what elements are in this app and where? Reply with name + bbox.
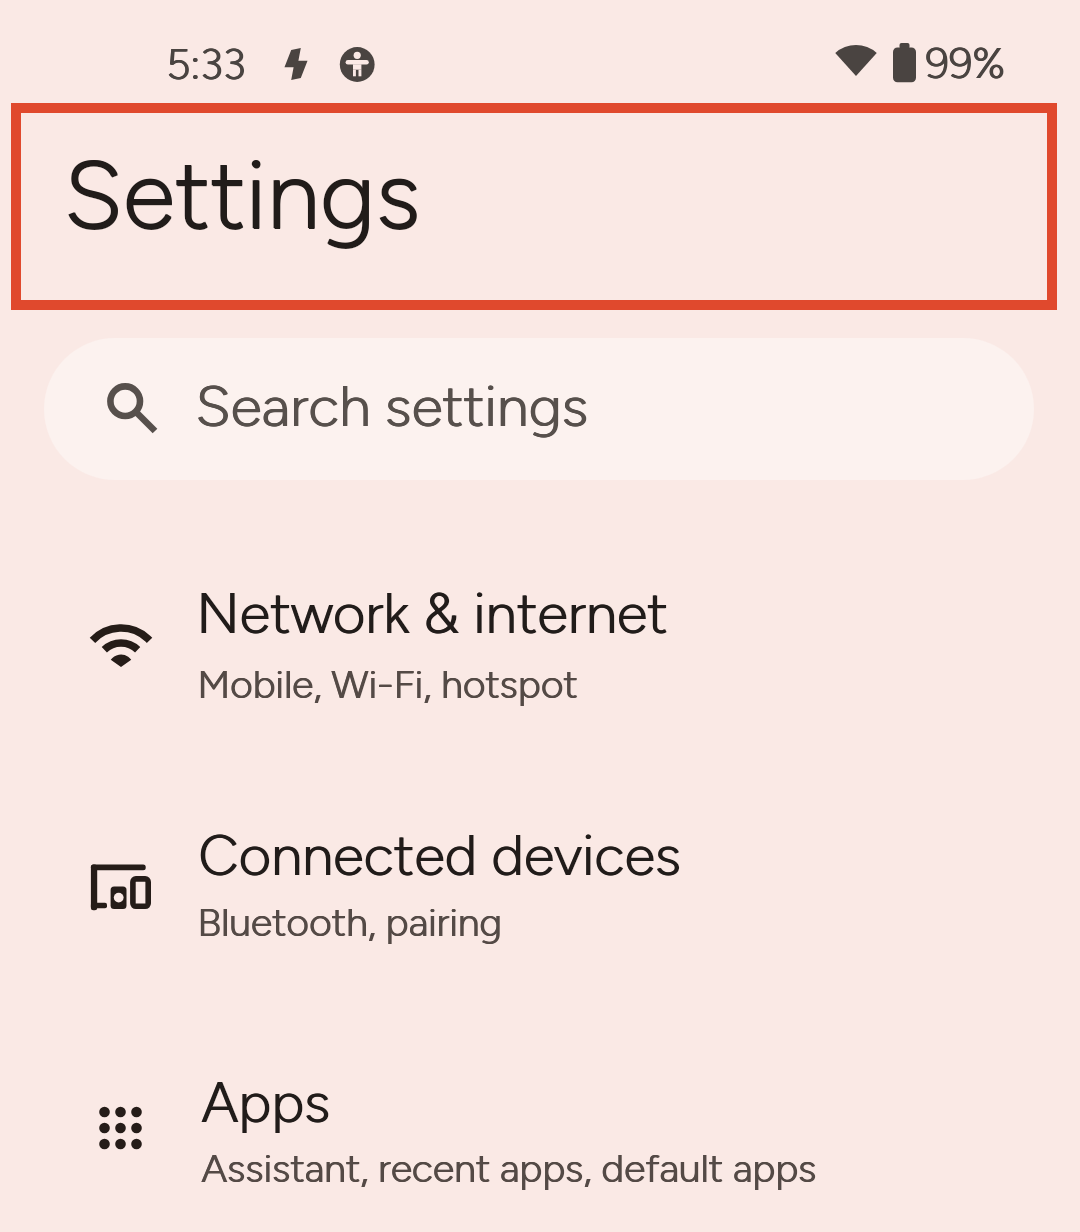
staticText: 99% xyxy=(925,38,1005,88)
staticText: Search settings xyxy=(195,372,588,440)
staticText: Bluetooth, pairing xyxy=(197,899,502,946)
staticText: Connected devices xyxy=(198,822,681,889)
staticText: Connected devices xyxy=(199,822,682,889)
staticText: 5:33 xyxy=(166,39,246,89)
staticText: Network & internet xyxy=(196,580,668,647)
staticText: Mobile, Wi-Fi, hotspot xyxy=(198,661,579,708)
button[interactable] xyxy=(0,540,1080,784)
staticText: Search settings xyxy=(195,372,588,440)
button[interactable] xyxy=(0,784,1080,1028)
staticText: Search settings xyxy=(196,372,589,440)
staticText: 5:33 xyxy=(166,39,246,89)
staticText: Assistant, recent apps, default apps xyxy=(202,1145,817,1192)
staticText: Apps xyxy=(201,1069,330,1136)
button[interactable] xyxy=(44,338,1034,480)
staticText: 5:33 xyxy=(167,39,247,89)
staticText: Mobile, Wi-Fi, hotspot xyxy=(197,661,578,708)
staticText: Settings xyxy=(64,138,421,253)
staticText: Bluetooth, pairing xyxy=(197,899,502,946)
staticText: Mobile, Wi-Fi, hotspot xyxy=(197,661,578,708)
staticText: Apps xyxy=(202,1069,331,1136)
staticText: Connected devices xyxy=(198,822,681,889)
button[interactable] xyxy=(0,1028,1080,1232)
staticText: Assistant, recent apps, default apps xyxy=(201,1145,816,1192)
staticText: Network & internet xyxy=(196,580,668,647)
staticText: Assistant, recent apps, default apps xyxy=(201,1145,816,1192)
staticText: Network & internet xyxy=(197,580,669,647)
staticText: Settings xyxy=(64,137,421,252)
staticText: 99% xyxy=(925,38,1005,88)
staticText: Apps xyxy=(201,1069,330,1136)
staticText: Bluetooth, pairing xyxy=(198,899,503,946)
staticText: 99% xyxy=(926,38,1006,88)
staticText: Settings xyxy=(63,137,420,252)
